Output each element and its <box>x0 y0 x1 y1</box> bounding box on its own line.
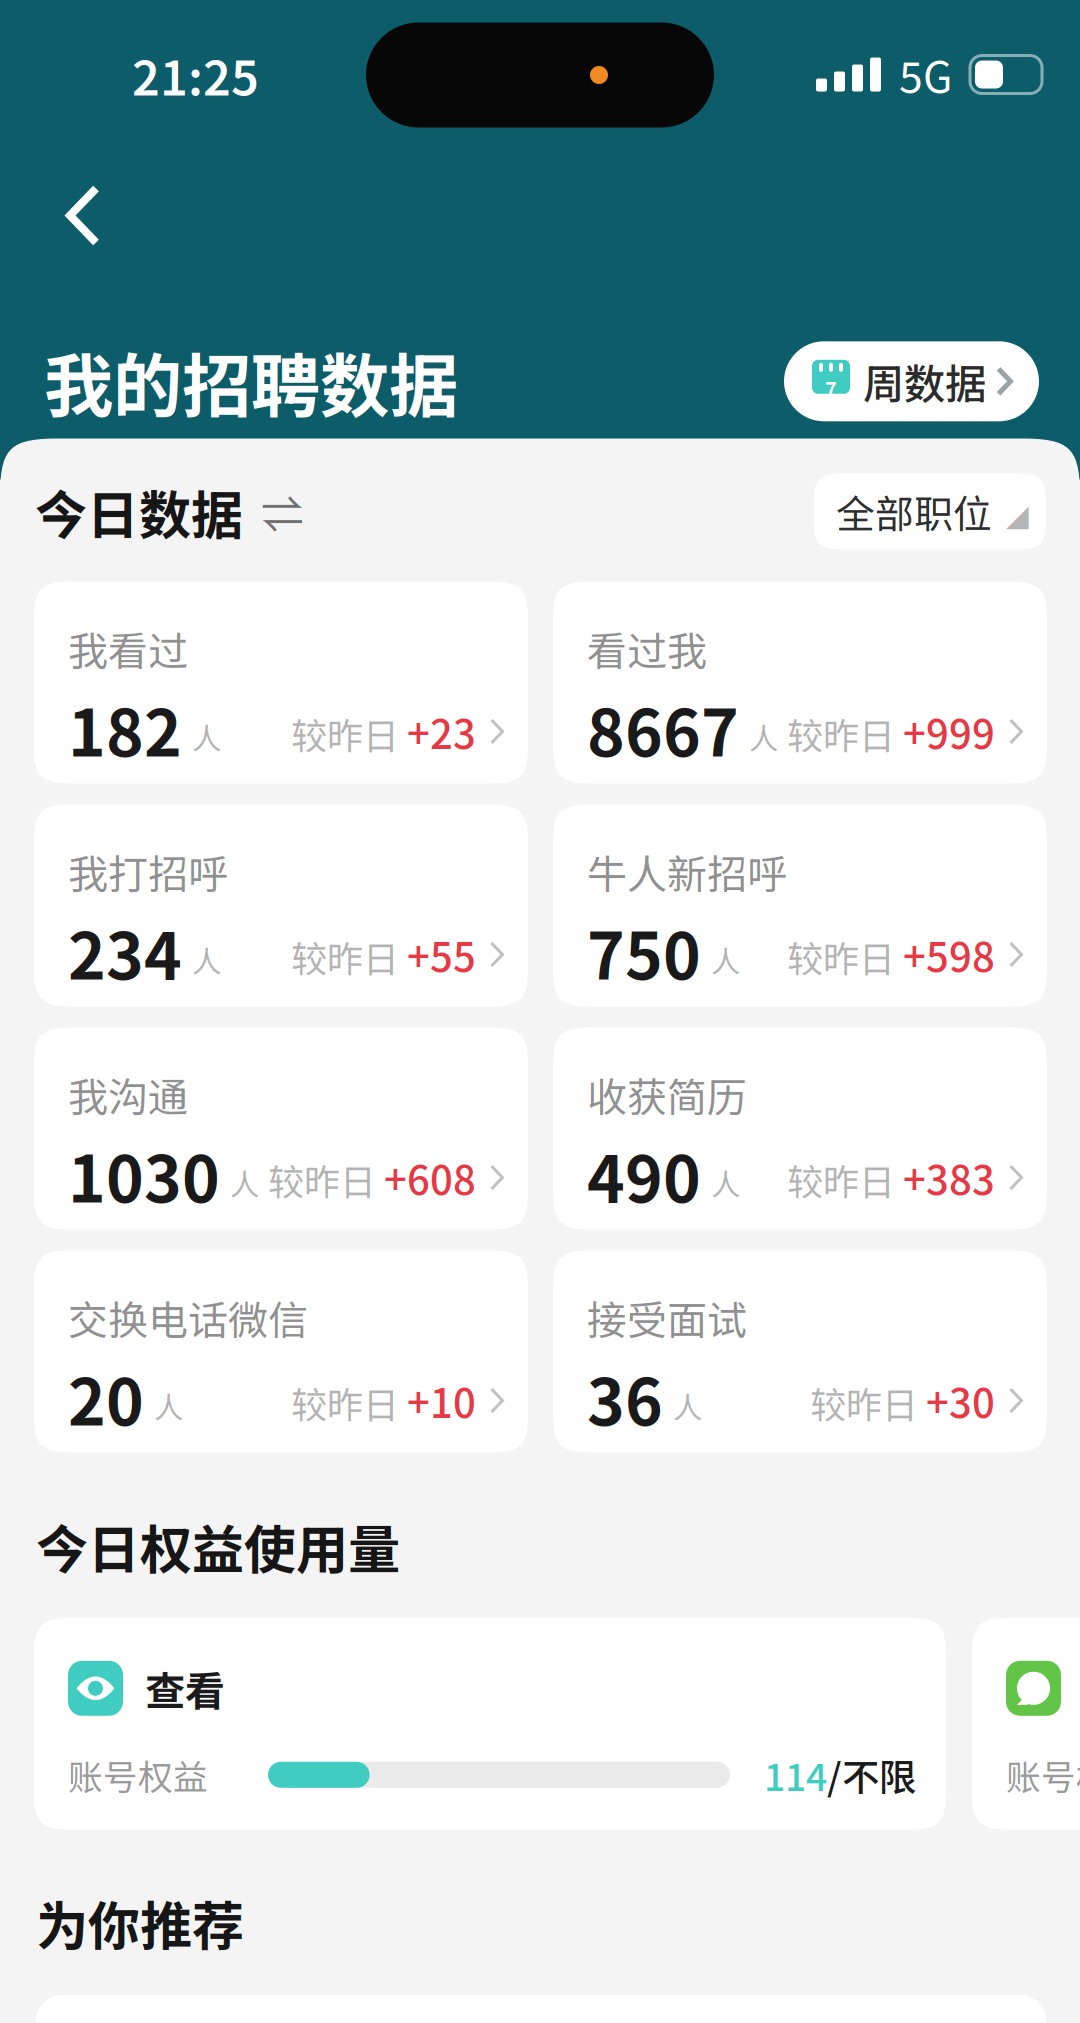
staticText: 收获简历 <box>587 1065 747 1123</box>
staticText: 5G <box>899 44 952 105</box>
staticText: 20 <box>68 1351 144 1444</box>
button[interactable]: 接受面试 <box>553 1250 1047 1452</box>
staticText: 较昨日 <box>291 930 399 982</box>
staticText: +10 <box>407 1371 476 1429</box>
button[interactable]: 查看 <box>34 1618 946 1830</box>
button[interactable]: 看过我 <box>553 581 1047 783</box>
staticText: +598 <box>903 925 995 983</box>
staticText: 人 <box>711 938 740 981</box>
staticText: 人 <box>154 1384 183 1427</box>
staticText: 490 <box>587 1128 701 1221</box>
staticText: ⇌ <box>261 481 304 542</box>
staticText: 我打招呼 <box>68 842 228 900</box>
staticText: 账号权益 <box>1006 1750 1080 1800</box>
staticText: 较昨日 <box>291 707 399 759</box>
staticText: 7 <box>825 374 837 403</box>
staticText: 今日权益使用量 <box>36 1508 400 1584</box>
staticText: 交换电话微信 <box>68 1288 308 1346</box>
button[interactable]: 牛人新招呼 <box>553 804 1047 1006</box>
staticText: 今日数据 <box>35 474 243 549</box>
staticText: 人 <box>749 715 778 758</box>
staticText: 人 <box>230 1161 259 1204</box>
staticText: 234 <box>68 905 182 998</box>
staticText: 牛人新招呼 <box>587 842 787 900</box>
staticText: 查看 <box>145 1659 225 1717</box>
staticText: +30 <box>926 1371 995 1429</box>
staticText: 较昨日 <box>810 1376 918 1428</box>
staticText: 750 <box>587 905 701 998</box>
staticText: 21:25 <box>132 40 259 109</box>
staticText: 较昨日 <box>291 1376 399 1428</box>
button[interactable]: 我沟通 <box>34 1027 528 1229</box>
staticText: 全部职位 <box>836 483 992 539</box>
button[interactable]: 7 <box>784 341 1039 421</box>
staticText: 8667 <box>587 682 739 775</box>
staticText: +608 <box>384 1148 476 1206</box>
staticText: 较昨日 <box>787 930 895 982</box>
staticText: +55 <box>407 925 476 983</box>
staticText: 1030 <box>68 1128 220 1221</box>
button[interactable]: 全部职位 <box>814 473 1046 549</box>
staticText: 账号权益 <box>68 1750 208 1800</box>
staticText: 182 <box>68 682 182 775</box>
staticText: 我的招聘数据 <box>44 331 458 431</box>
staticText: 我沟通 <box>68 1065 188 1123</box>
staticText: 较昨日 <box>268 1153 376 1205</box>
staticText: 人 <box>711 1161 740 1204</box>
staticText: 接受面试 <box>587 1288 747 1346</box>
staticText: 为你推荐 <box>36 1885 244 1960</box>
staticText: 人 <box>673 1384 702 1427</box>
staticText: 114 <box>764 1748 827 1802</box>
staticText: 36 <box>587 1351 663 1444</box>
button[interactable]: 我看过 <box>34 581 528 783</box>
staticText: +383 <box>903 1148 995 1206</box>
button[interactable]: 收获简历 <box>553 1027 1047 1229</box>
button[interactable]: 我打招呼 <box>34 804 528 1006</box>
staticText: /不限 <box>827 1748 916 1802</box>
staticText: 周数据 <box>863 351 986 411</box>
staticText: 较昨日 <box>787 1153 895 1205</box>
button[interactable]: Back <box>0 149 150 266</box>
staticText: 看过我 <box>587 619 707 677</box>
staticText: +999 <box>903 702 995 760</box>
staticText: +23 <box>407 702 476 760</box>
button[interactable]: 沟通 <box>972 1618 1080 1830</box>
staticText: 我看过 <box>68 619 188 677</box>
button[interactable]: 交换电话微信 <box>34 1250 528 1452</box>
staticText: 人 <box>192 715 221 758</box>
staticText: ◢ <box>1006 500 1029 533</box>
staticText: 较昨日 <box>787 707 895 759</box>
staticText: 人 <box>192 938 221 981</box>
